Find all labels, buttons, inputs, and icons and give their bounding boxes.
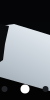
- button[interactable]: Shutter: [18, 82, 31, 95]
- button[interactable]: Switch camera: [39, 83, 50, 95]
- button[interactable]: Photo library: [0, 83, 10, 95]
